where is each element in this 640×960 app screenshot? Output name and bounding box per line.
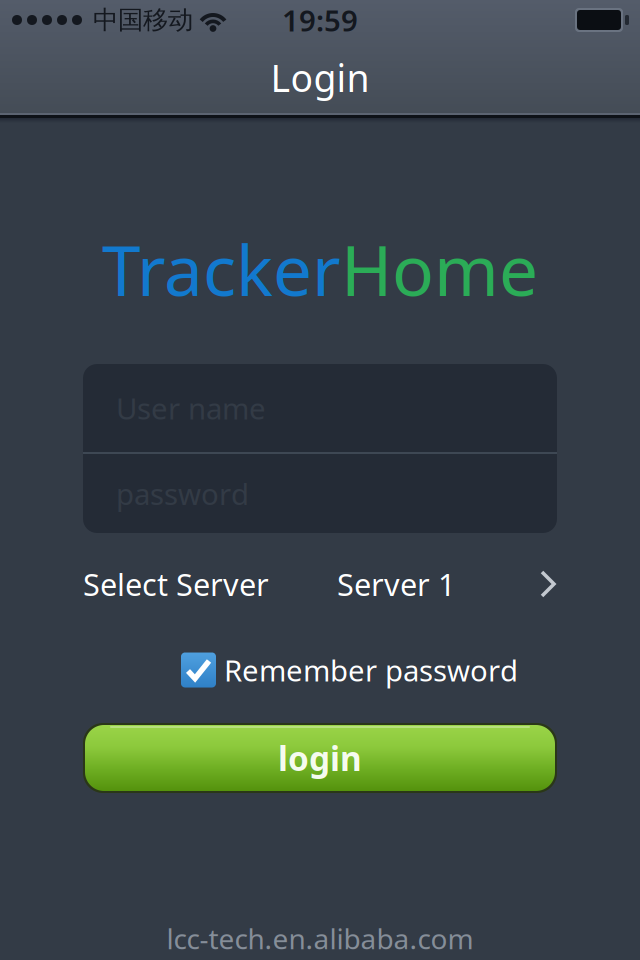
staticText: lcc-tech.en.alibaba.com <box>166 920 473 957</box>
staticText: Server 1 <box>337 564 456 604</box>
staticText: 中国移动 <box>93 4 193 35</box>
staticText: Login <box>270 53 369 102</box>
staticText: Home <box>341 223 538 315</box>
button[interactable]: login <box>83 723 557 793</box>
staticText: login <box>278 736 362 780</box>
staticText: password <box>116 474 249 513</box>
staticText: Select Server <box>83 564 269 604</box>
staticText: User name <box>116 388 266 427</box>
button[interactable]: Select Server <box>83 556 557 612</box>
staticText: Tracker <box>102 223 341 315</box>
staticText: Remember password <box>224 650 518 689</box>
staticText: 19:59 <box>282 0 358 39</box>
button[interactable]: Remember password <box>181 652 518 688</box>
